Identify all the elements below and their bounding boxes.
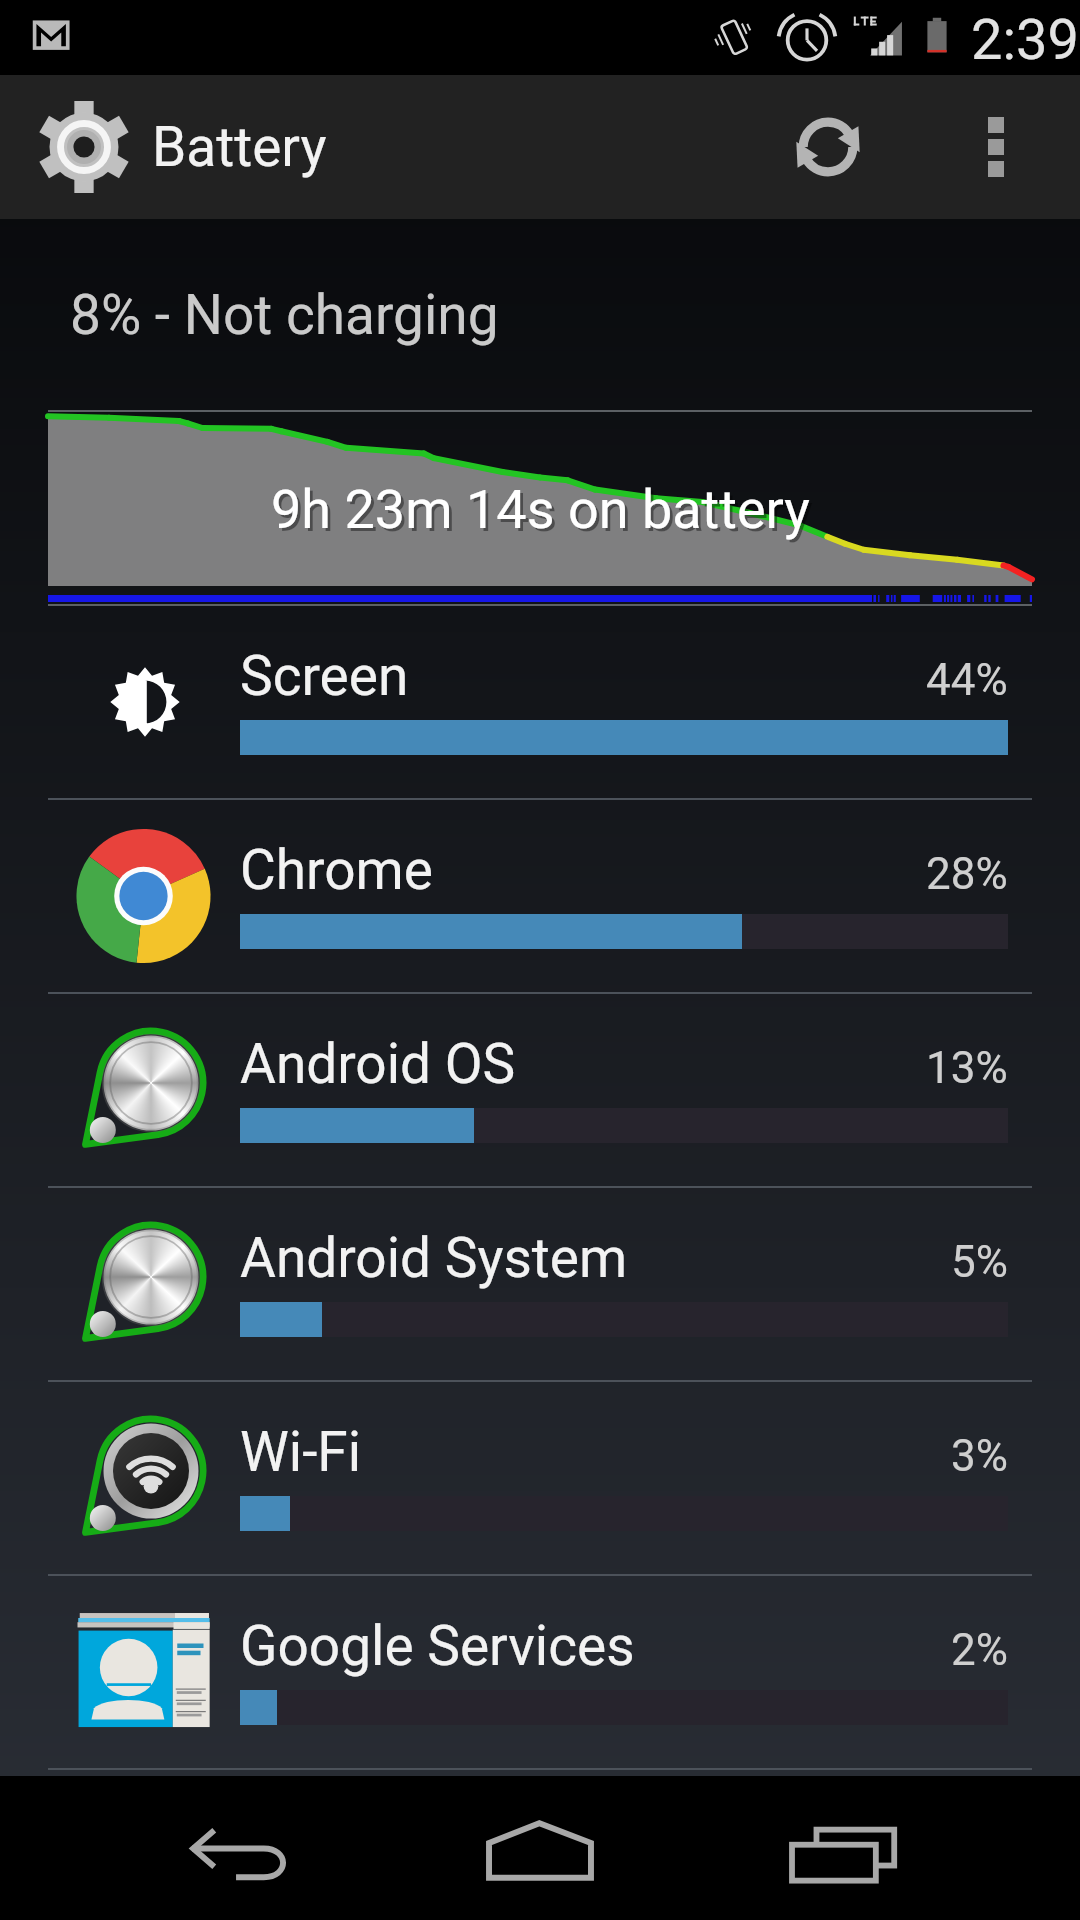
staticText: 2:39: [971, 7, 1079, 73]
staticText: 5%: [951, 1236, 1008, 1288]
button[interactable]: Home: [450, 1780, 630, 1916]
staticText: 44%: [926, 654, 1008, 706]
staticText: 28%: [926, 848, 1008, 900]
button[interactable]: Screen: [0, 606, 1080, 798]
staticText: Wi-Fi: [240, 1420, 362, 1484]
button[interactable]: Refresh: [772, 91, 884, 203]
staticText: Android OS: [240, 1032, 516, 1096]
staticText: 9h 23m 14s on battery: [274, 481, 813, 544]
button[interactable]: Android System: [0, 1188, 1080, 1380]
button[interactable]: Google Services: [0, 1576, 1080, 1768]
button[interactable]: Chrome: [0, 800, 1080, 992]
staticText: 8% - Not charging: [70, 283, 499, 347]
staticText: Screen: [240, 644, 409, 708]
button[interactable]: Android OS: [0, 994, 1080, 1186]
staticText: 9h 23m 14s on battery: [271, 478, 810, 541]
staticText: Android System: [240, 1226, 628, 1290]
button[interactable]: Battery: [0, 75, 1080, 219]
staticText: Google Services: [240, 1614, 635, 1678]
staticText: 3%: [951, 1430, 1008, 1482]
button[interactable]: Wi-Fi: [0, 1382, 1080, 1574]
button[interactable]: Back: [150, 1780, 330, 1916]
button[interactable]: More options: [940, 91, 1052, 203]
staticText: Chrome: [240, 838, 433, 902]
staticText: 13%: [926, 1042, 1008, 1094]
staticText: 2%: [951, 1624, 1008, 1676]
button[interactable]: Recent apps: [753, 1780, 933, 1916]
staticText: Battery: [152, 115, 327, 179]
